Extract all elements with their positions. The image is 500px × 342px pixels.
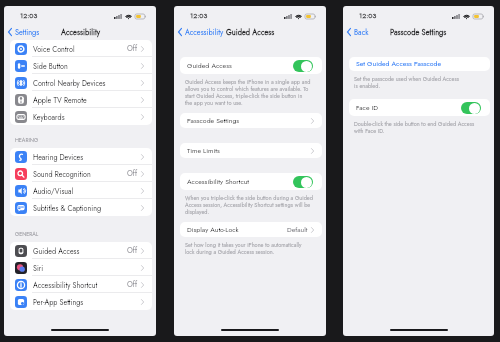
staticText: Guided Access keeps the iPhone in a sing…: [185, 78, 311, 107]
staticText: Default: [287, 225, 308, 235]
button[interactable]: Face ID: [356, 99, 481, 116]
button[interactable]: Sound Recognition: [10, 165, 152, 182]
staticText: Guided Access: [33, 246, 80, 256]
button[interactable]: Toggle: [293, 60, 313, 72]
button[interactable]: Toggle: [461, 102, 481, 114]
staticText: Off: [127, 279, 138, 290]
button[interactable]: Passcode Settings: [187, 113, 314, 128]
staticText: Control Nearby Devices: [33, 78, 106, 88]
staticText: Siri: [33, 263, 44, 273]
button[interactable]: Apple TV Remote: [10, 91, 152, 108]
staticText: Set the passcode used when Guided Access…: [354, 75, 459, 90]
button[interactable]: Display Auto-Lock: [187, 222, 314, 237]
staticText: When you triple-click the side button du…: [185, 194, 313, 216]
staticText: Off: [127, 43, 138, 54]
button[interactable]: Guided Access: [187, 57, 313, 74]
staticText: Set Guided Access Passcode: [356, 59, 442, 69]
staticText: Subtitles & Captioning: [33, 203, 102, 213]
button[interactable]: Accessibility: [174, 25, 226, 39]
staticText: Passcode Settings: [187, 116, 240, 126]
button[interactable]: Accessibility Shortcut: [10, 276, 152, 293]
button[interactable]: Audio/Visual: [10, 182, 152, 199]
staticText: Hearing Devices: [33, 152, 84, 162]
staticText: Guided Access: [226, 27, 275, 38]
button[interactable]: Toggle: [293, 176, 313, 188]
staticText: Accessibility Shortcut: [187, 177, 250, 187]
staticText: Off: [127, 168, 138, 179]
button[interactable]: Hearing Devices: [10, 148, 152, 165]
staticText: Set how long it takes your iPhone to aut…: [185, 241, 302, 256]
staticText: Accessibility: [61, 27, 100, 38]
button[interactable]: Settings: [4, 25, 42, 39]
staticText: Accessibility Shortcut: [33, 280, 98, 290]
button[interactable]: Side Button: [10, 57, 152, 74]
staticText: Sound Recognition: [33, 169, 91, 179]
staticText: Time Limits: [187, 146, 220, 156]
button[interactable]: Control Nearby Devices: [10, 74, 152, 91]
button[interactable]: Guided Access: [10, 242, 152, 259]
staticText: 12:03: [190, 11, 208, 21]
staticText: Settings: [15, 27, 40, 37]
staticText: 12:03: [359, 11, 377, 21]
staticText: Accessibility: [185, 27, 224, 37]
button[interactable]: Keyboards: [10, 108, 152, 125]
staticText: 12:03: [20, 11, 38, 21]
button[interactable]: Time Limits: [187, 143, 314, 158]
staticText: Face ID: [356, 103, 378, 113]
staticText: Side Button: [33, 61, 68, 71]
button[interactable]: Accessibility Shortcut: [187, 173, 313, 190]
button[interactable]: Subtitles & Captioning: [10, 199, 152, 216]
staticText: Double-click the side button to end Guid…: [354, 120, 475, 135]
button[interactable]: Siri: [10, 259, 152, 276]
staticText: Keyboards: [33, 112, 65, 122]
button[interactable]: Set Guided Access Passcode: [356, 57, 485, 71]
staticText: Passcode Settings: [390, 27, 447, 38]
button[interactable]: Voice Control: [10, 40, 152, 57]
staticText: Voice Control: [33, 44, 75, 54]
staticText: Guided Access: [187, 61, 232, 71]
staticText: Off: [127, 245, 138, 256]
staticText: GENERAL: [15, 230, 39, 238]
button[interactable]: Per-App Settings: [10, 293, 152, 310]
staticText: Audio/Visual: [33, 186, 74, 196]
staticText: Per-App Settings: [33, 297, 84, 307]
staticText: Display Auto-Lock: [187, 225, 239, 235]
staticText: Apple TV Remote: [33, 95, 87, 105]
button[interactable]: Back: [343, 25, 371, 39]
staticText: Back: [354, 27, 369, 37]
staticText: HEARING: [15, 136, 39, 144]
